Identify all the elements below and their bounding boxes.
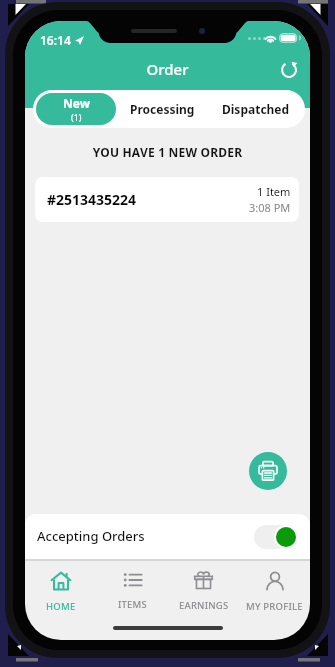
button[interactable]: Accepting Orders: [25, 514, 310, 559]
button[interactable]: Print receipt: [249, 452, 287, 490]
staticText: ITEMS: [118, 598, 147, 611]
staticText: #2513435224: [47, 190, 137, 209]
staticText: Accepting Orders: [37, 527, 145, 545]
staticText: 16:14: [40, 32, 71, 48]
staticText: YOU HAVE 1 NEW ORDER: [25, 144, 310, 160]
staticText: MY PROFILE: [246, 600, 303, 613]
staticText: Dispatched: [222, 101, 290, 117]
staticText: 3:08 PM: [249, 200, 291, 215]
button[interactable]: Dispatched: [209, 93, 302, 125]
staticText: EARNINGS: [179, 599, 229, 612]
button[interactable]: ITEMS: [97, 561, 168, 621]
button[interactable]: New: [36, 93, 116, 125]
button[interactable]: #2513435224: [35, 177, 299, 222]
button[interactable]: Refresh: [275, 56, 302, 83]
button[interactable]: Accepting Orders toggle: [254, 525, 298, 549]
staticText: Order: [25, 59, 310, 79]
staticText: New: [63, 95, 90, 111]
button[interactable]: EARNINGS: [168, 561, 239, 621]
staticText: 1 Item: [257, 184, 291, 199]
staticText: HOME: [46, 600, 76, 613]
staticText: (1): [71, 111, 82, 123]
button[interactable]: Processing: [116, 93, 209, 125]
button[interactable]: HOME: [25, 561, 97, 621]
staticText: Processing: [130, 101, 195, 117]
button[interactable]: MY PROFILE: [239, 561, 310, 621]
